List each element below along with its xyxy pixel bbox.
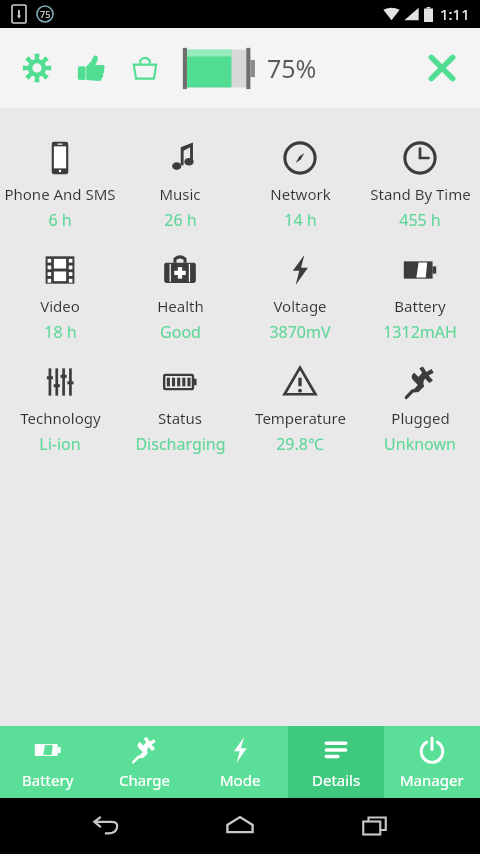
staticText: Charge bbox=[119, 770, 170, 790]
staticText: Music bbox=[159, 184, 201, 204]
staticText: 29.8℃ bbox=[276, 433, 324, 455]
button[interactable]: Technology bbox=[0, 356, 120, 468]
staticText: Video bbox=[40, 296, 80, 316]
staticText: 75 bbox=[40, 8, 51, 20]
staticText: Details bbox=[312, 770, 361, 790]
staticText: Mode bbox=[220, 770, 261, 790]
staticText: Battery bbox=[22, 770, 74, 790]
button[interactable]: Voltage bbox=[240, 244, 360, 356]
button[interactable]: Health bbox=[120, 244, 240, 356]
button[interactable]: Phone And SMS bbox=[0, 132, 120, 244]
button[interactable]: Recent apps bbox=[346, 798, 402, 854]
button[interactable]: Mode bbox=[192, 726, 288, 798]
staticText: Status bbox=[158, 408, 202, 428]
button[interactable]: Manager bbox=[384, 726, 480, 798]
staticText: 1:11 bbox=[440, 4, 470, 24]
staticText: Unknown bbox=[384, 433, 456, 455]
staticText: Li-ion bbox=[39, 433, 81, 455]
button[interactable]: Charge bbox=[96, 726, 192, 798]
staticText: 455 h bbox=[399, 209, 441, 231]
staticText: 1312mAH bbox=[383, 321, 457, 343]
staticText: Plugged bbox=[391, 408, 450, 428]
staticText: Temperature bbox=[255, 408, 346, 428]
button[interactable]: Rate bbox=[68, 45, 114, 91]
staticText: 26 h bbox=[164, 209, 197, 231]
staticText: 14 h bbox=[284, 209, 317, 231]
staticText: Stand By Time bbox=[370, 184, 471, 204]
button[interactable]: Music bbox=[120, 132, 240, 244]
staticText: Manager bbox=[400, 770, 464, 790]
button[interactable]: Temperature bbox=[240, 356, 360, 468]
button[interactable]: Close bbox=[418, 44, 466, 92]
button[interactable]: Battery bbox=[0, 726, 96, 798]
staticText: Voltage bbox=[273, 296, 327, 316]
staticText: 18 h bbox=[44, 321, 77, 343]
staticText: Phone And SMS bbox=[4, 184, 116, 204]
button[interactable]: Back bbox=[78, 798, 134, 854]
button[interactable]: Plugged bbox=[360, 356, 480, 468]
button[interactable]: Network bbox=[240, 132, 360, 244]
staticText: Good bbox=[160, 321, 201, 343]
button[interactable]: Store bbox=[122, 45, 168, 91]
button[interactable]: Status bbox=[120, 356, 240, 468]
button[interactable]: Stand By Time bbox=[360, 132, 480, 244]
staticText: 3870mV bbox=[269, 321, 331, 343]
staticText: Battery bbox=[394, 296, 446, 316]
staticText: 6 h bbox=[48, 209, 72, 231]
button[interactable]: Settings bbox=[14, 45, 60, 91]
staticText: 75% bbox=[267, 51, 317, 85]
button[interactable]: Home bbox=[212, 798, 268, 854]
button[interactable]: Battery bbox=[360, 244, 480, 356]
staticText: Network bbox=[270, 184, 331, 204]
button[interactable]: Details bbox=[288, 726, 384, 798]
staticText: Health bbox=[157, 296, 204, 316]
staticText: Discharging bbox=[135, 433, 226, 455]
button[interactable]: Video bbox=[0, 244, 120, 356]
staticText: Technology bbox=[20, 408, 101, 428]
